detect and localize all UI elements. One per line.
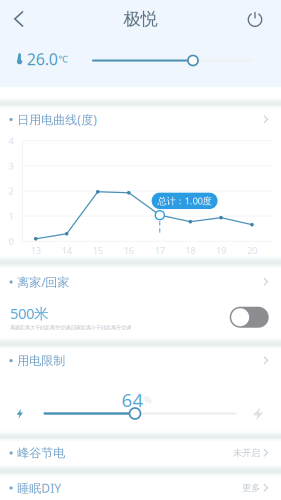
staticText: 14 xyxy=(62,244,72,256)
staticText: 总计：1.00度 xyxy=(158,195,212,207)
button[interactable]: 离家/回家 xyxy=(0,267,281,296)
staticText: 离家/回家 xyxy=(17,274,69,290)
button[interactable]: 500米 xyxy=(0,296,281,338)
staticText: % xyxy=(144,393,152,406)
staticText: 睡眠DIY xyxy=(17,480,61,496)
staticText: 1 xyxy=(8,210,13,222)
button[interactable]: 睡眠DIY xyxy=(0,476,281,500)
staticText: 500米 xyxy=(10,303,49,323)
staticText: 15 xyxy=(93,244,103,256)
staticText: 峰谷节电 xyxy=(17,446,65,460)
staticText: 17 xyxy=(155,244,165,256)
staticText: 极悦 xyxy=(123,8,157,30)
staticText: 16 xyxy=(124,244,134,256)
staticText: 3 xyxy=(8,160,13,172)
button[interactable]: 峰谷节电 xyxy=(0,441,281,465)
button[interactable]: Power xyxy=(240,4,270,34)
staticText: 13 xyxy=(31,244,41,256)
staticText: 64 xyxy=(121,387,143,412)
staticText: 日用电曲线(度) xyxy=(17,111,97,127)
staticText: 26.0 xyxy=(27,48,58,70)
button[interactable]: 日用电曲线(度) xyxy=(0,108,281,131)
button[interactable]: 用电限制 xyxy=(0,348,281,373)
staticText: 19 xyxy=(216,244,226,256)
staticText: 2 xyxy=(8,185,13,197)
staticText: 18 xyxy=(185,244,195,256)
staticText: 4 xyxy=(8,134,13,147)
staticText: 用电限制 xyxy=(17,353,65,368)
button[interactable]: Back xyxy=(0,0,34,34)
staticText: ℃ xyxy=(59,53,68,65)
staticText: 更多 xyxy=(242,482,260,494)
staticText: 20 xyxy=(247,244,257,256)
staticText: 0 xyxy=(8,235,13,247)
staticText: 未开启 xyxy=(233,447,260,459)
staticText: 离家距离大于此距离关空调,回家距离小于此距离开空调 xyxy=(10,324,131,331)
